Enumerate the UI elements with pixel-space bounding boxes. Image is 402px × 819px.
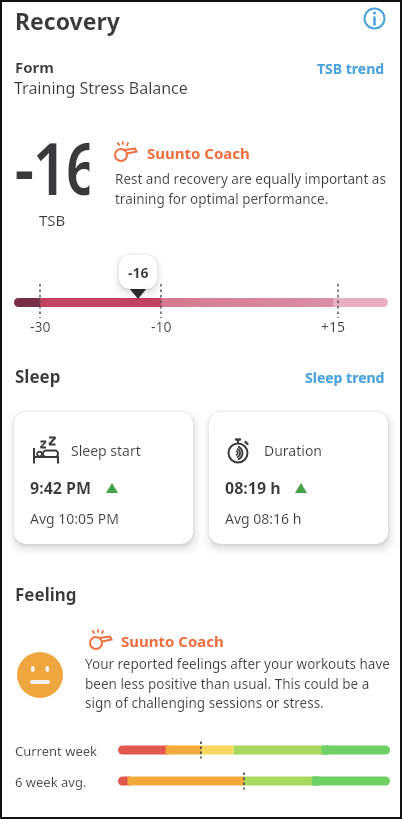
staticText: -16 [15, 118, 89, 216]
button[interactable]: Duration [209, 412, 388, 544]
button[interactable]: Sleep trend [305, 368, 385, 387]
staticText: Recovery [15, 5, 120, 36]
staticText: 08:19 h [225, 477, 281, 499]
staticText: Sleep [15, 365, 61, 388]
staticText: -10 [151, 317, 172, 336]
staticText: Avg 08:16 h [225, 509, 302, 528]
staticText: +15 [321, 317, 346, 336]
staticText: -30 [30, 317, 51, 336]
staticText: Duration [264, 441, 323, 460]
staticText: 9:42 PM [30, 477, 92, 499]
staticText: -16 [128, 263, 149, 282]
staticText: Current week [15, 742, 97, 760]
staticText: Training Stress Balance [14, 77, 188, 99]
staticText: Suunto Coach [147, 143, 250, 163]
staticText: Form [15, 57, 54, 77]
staticText: Sleep start [71, 441, 141, 460]
staticText: Feeling [15, 583, 77, 606]
staticText: TSB [39, 210, 66, 230]
staticText: 6 week avg. [15, 773, 87, 791]
button[interactable] [118, 741, 390, 759]
staticText: Suunto Coach [121, 631, 224, 651]
button[interactable] [363, 7, 386, 30]
button[interactable] [118, 772, 390, 790]
button[interactable]: TSB trend [317, 59, 385, 78]
button[interactable]: Sleep start [14, 412, 193, 544]
staticText: Rest and recovery are equally important … [115, 170, 386, 208]
staticText: Your reported feelings after your workou… [85, 655, 390, 712]
staticText: Avg 10:05 PM [30, 509, 119, 528]
